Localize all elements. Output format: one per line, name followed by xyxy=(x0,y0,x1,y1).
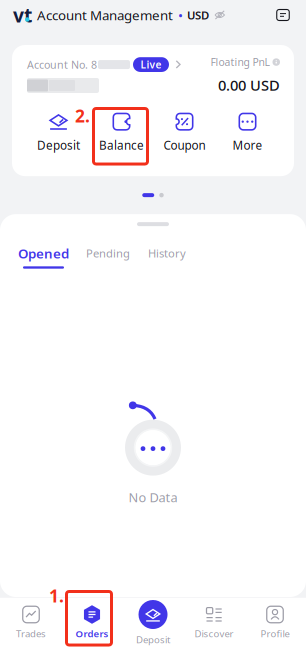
staticText: 0.00 USD xyxy=(218,75,280,95)
staticText: Deposit xyxy=(37,137,80,153)
staticText: Orders xyxy=(75,627,108,640)
button[interactable]: Discover xyxy=(183,597,244,649)
staticText: Pending xyxy=(86,246,130,261)
staticText: Account No. 8 xyxy=(27,57,97,72)
button[interactable]: Pending xyxy=(69,244,130,261)
staticText: Discover xyxy=(194,627,233,640)
staticText: Coupon xyxy=(163,137,205,153)
staticText: Live xyxy=(140,58,161,71)
staticText: History xyxy=(148,246,186,261)
staticText: 2. xyxy=(75,104,90,128)
button[interactable]: Coupon xyxy=(153,111,216,153)
button[interactable]: Deposit xyxy=(122,597,183,649)
staticText: • xyxy=(178,6,183,24)
button[interactable]: Profile xyxy=(244,597,305,649)
button[interactable]: Orders xyxy=(61,597,122,649)
button[interactable]: Messages xyxy=(270,2,296,28)
staticText: USD xyxy=(187,7,209,23)
button[interactable]: Trades xyxy=(0,597,61,649)
staticText: More xyxy=(232,137,262,153)
staticText: vt xyxy=(13,2,32,28)
staticText: No Data xyxy=(128,489,177,506)
staticText: Balance xyxy=(99,137,144,153)
staticText: Floating PnL xyxy=(210,55,269,69)
staticText: Account Management xyxy=(37,6,173,24)
button[interactable]: Deposit xyxy=(27,111,90,153)
button[interactable]: Balance xyxy=(90,111,153,153)
staticText: 1. xyxy=(49,584,64,608)
button[interactable]: History xyxy=(130,244,186,261)
button[interactable]: Account No. 8 xyxy=(27,57,181,72)
button[interactable]: More xyxy=(216,111,279,153)
staticText: Profile xyxy=(260,627,289,640)
staticText: Opened xyxy=(18,244,69,262)
staticText: Deposit xyxy=(136,633,170,646)
button[interactable]: Opened xyxy=(18,244,69,269)
staticText: Trades xyxy=(16,627,46,640)
